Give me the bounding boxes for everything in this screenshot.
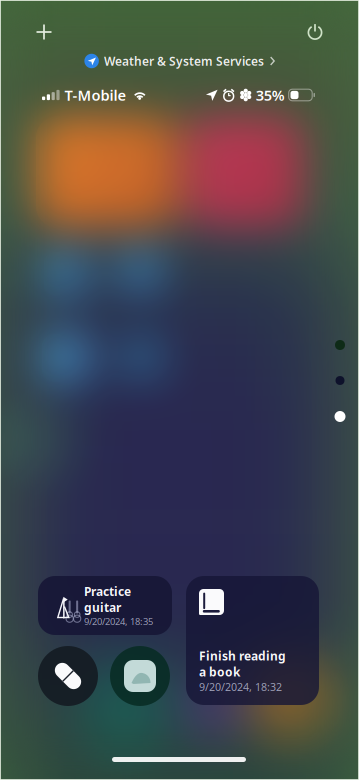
staticText: 9/20/2024, 18:32 (199, 680, 282, 694)
button[interactable]: Practice (38, 576, 172, 635)
staticText: Practice (84, 583, 131, 599)
staticText: a book (199, 664, 240, 680)
staticText: Weather & System Services (104, 53, 264, 69)
staticText: T-Mobile (65, 85, 127, 105)
button[interactable]: Take medication (38, 646, 98, 706)
staticText: guitar (84, 599, 121, 615)
staticText: 35% (256, 85, 285, 105)
staticText: Finish reading (199, 648, 286, 664)
button[interactable]: Add widget (22, 13, 66, 51)
button[interactable]: Weather & System Services (84, 53, 275, 69)
button[interactable]: Finish reading (186, 576, 319, 705)
button[interactable]: App shortcut (110, 646, 170, 706)
staticText: 9/20/2024, 18:35 (84, 615, 153, 628)
button[interactable]: Power (293, 13, 337, 51)
